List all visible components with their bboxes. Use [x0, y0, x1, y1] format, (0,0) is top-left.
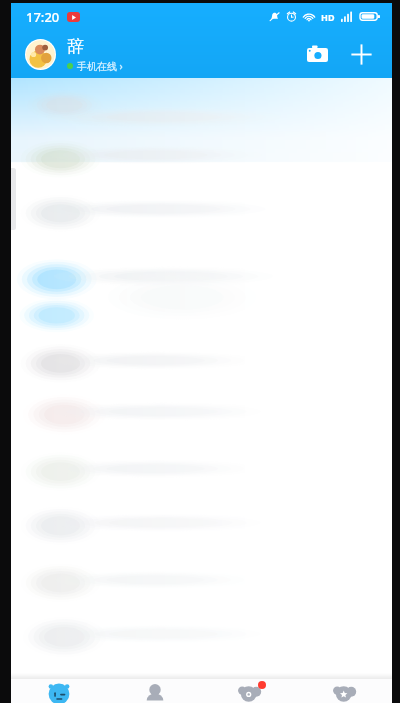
button[interactable]: Contacts	[107, 679, 202, 703]
staticText: HD	[321, 11, 335, 23]
button[interactable]: Profile avatar	[26, 40, 55, 69]
button[interactable]: Discover	[202, 679, 297, 703]
button[interactable]: 辞	[67, 36, 300, 73]
button[interactable]: Messages	[11, 679, 107, 703]
staticText: 辞	[67, 36, 84, 57]
button[interactable]: Dynamic	[297, 679, 392, 703]
staticText: 手机在线 ›	[77, 59, 123, 73]
button[interactable]: Camera	[300, 37, 334, 71]
button[interactable]: Add	[344, 37, 378, 71]
staticText: 17:20	[26, 8, 60, 26]
